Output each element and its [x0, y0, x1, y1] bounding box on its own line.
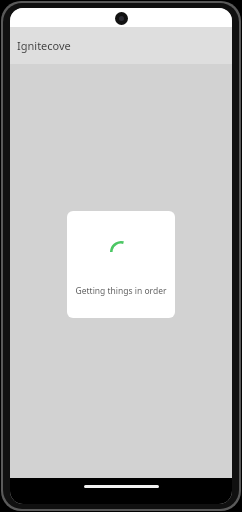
staticText: Getting things in order: [67, 285, 175, 297]
staticText: Ignitecove: [17, 38, 71, 53]
button[interactable]: Loading: [67, 211, 175, 318]
other: Loading: [110, 241, 132, 263]
button[interactable]: Home gesture bar: [84, 485, 159, 488]
